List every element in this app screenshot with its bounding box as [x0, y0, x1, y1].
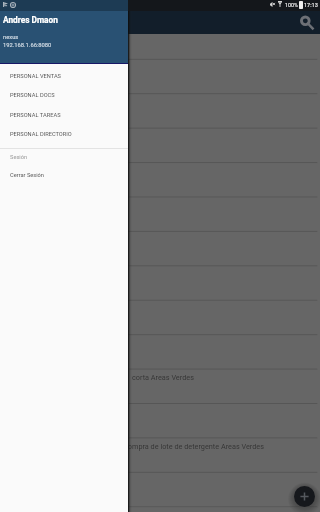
staticText: Cerrar Sesión — [10, 172, 44, 179]
staticText: PERSONAL VENTAS — [10, 73, 61, 80]
button[interactable]: PERSONAL VENTAS — [0, 70, 128, 83]
button[interactable]: Search — [294, 11, 317, 34]
button[interactable]: Andres Dmaon — [0, 0, 128, 63]
button[interactable]: PERSONAL TAREAS — [0, 109, 128, 122]
staticText: 192.168.1.66:8080 — [3, 42, 52, 49]
button[interactable]: PERSONAL DIRECTORIO — [0, 128, 128, 141]
button[interactable]: Sesión — [0, 151, 128, 164]
staticText: 100% — [285, 2, 298, 8]
staticText: corta Areas Verdes — [132, 373, 194, 382]
button[interactable]: PERSONAL DOCS — [0, 89, 128, 102]
staticText: PERSONAL DOCS — [10, 92, 55, 99]
button[interactable]: Add — [294, 486, 315, 507]
staticText: PERSONAL TAREAS — [10, 112, 61, 119]
staticText: Sesión — [10, 154, 28, 161]
staticText: compra de lote de detergente Areas Verde… — [124, 442, 264, 451]
staticText: PERSONAL DIRECTORIO — [10, 131, 72, 138]
staticText: 17:13 — [304, 2, 318, 9]
button[interactable]: Cerrar Sesión — [0, 169, 128, 182]
button[interactable]: corta Areas Verdes — [132, 373, 194, 382]
staticText: Andres Dmaon — [3, 15, 58, 25]
staticText: nexus — [3, 34, 19, 41]
button[interactable]: compra de lote de detergente Areas Verde… — [124, 442, 264, 451]
